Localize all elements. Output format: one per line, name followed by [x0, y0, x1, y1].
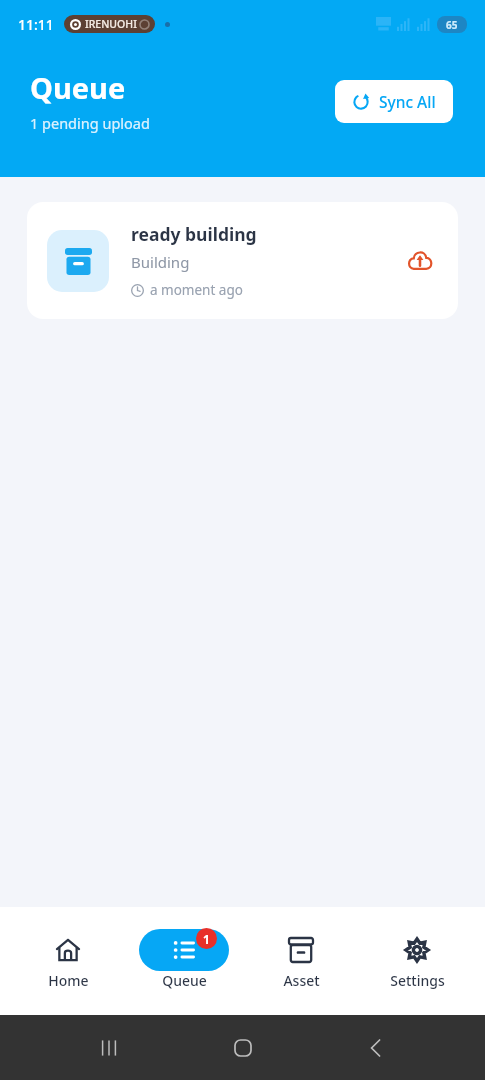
- staticText: ready building: [131, 222, 257, 246]
- button[interactable]: Settings: [369, 925, 465, 994]
- button[interactable]: Upload: [402, 243, 438, 279]
- button[interactable]: Recent apps: [85, 1024, 133, 1072]
- button[interactable]: Home: [219, 1024, 267, 1072]
- button[interactable]: 1: [136, 925, 232, 994]
- staticText: 65: [446, 18, 458, 32]
- button[interactable]: Asset: [253, 925, 349, 994]
- staticText: Sync All: [379, 91, 436, 112]
- staticText: Asset: [283, 971, 320, 990]
- staticText: IRENUOHI: [85, 17, 137, 31]
- staticText: Home: [48, 971, 89, 990]
- staticText: 11:11: [18, 15, 54, 34]
- staticText: 1 pending upload: [30, 113, 150, 133]
- staticText: Queue: [162, 971, 207, 990]
- button[interactable]: Sync All: [335, 80, 453, 123]
- button[interactable]: Home: [20, 925, 116, 994]
- staticText: Settings: [390, 971, 445, 990]
- button[interactable]: Back: [352, 1024, 400, 1072]
- staticText: a moment ago: [150, 281, 243, 299]
- staticText: 1: [203, 931, 210, 947]
- staticText: Building: [131, 252, 190, 272]
- staticText: Queue: [30, 68, 126, 107]
- button[interactable]: ready building: [27, 202, 458, 319]
